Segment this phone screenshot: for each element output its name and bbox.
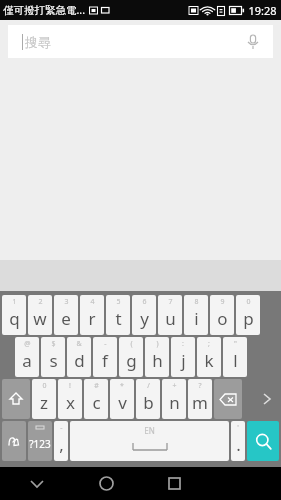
staticText: y [140,307,149,330]
staticText: z [40,391,48,414]
staticText: ' [237,423,239,433]
staticText: 5 [116,297,121,307]
button[interactable]: / [136,379,160,419]
staticText: w [33,307,47,330]
staticText: p [243,307,254,330]
staticText: + [172,381,177,391]
button[interactable]: Recents [157,467,191,500]
staticText: h [152,349,163,372]
staticText: ; [208,339,210,349]
button[interactable]: ?123 [28,421,52,461]
button[interactable]: 4 [80,295,104,335]
button[interactable]: ! [58,379,82,419]
button[interactable]: - [54,421,68,461]
button[interactable]: Hide keyboard [20,467,54,500]
staticText: g [126,349,137,372]
button[interactable]: 6 [132,295,156,335]
staticText: u [165,307,176,330]
staticText: : [182,339,184,349]
button[interactable]: ( [119,337,143,377]
staticText: v [118,391,127,414]
staticText: 0 [42,381,47,391]
button[interactable]: - [93,337,117,377]
button[interactable]: Search [247,421,279,461]
staticText: ?123 [29,437,51,451]
staticText: q [9,307,20,330]
staticText: 2 [38,297,43,307]
staticText: l [233,349,238,372]
button[interactable]: 搜尋 [8,25,273,58]
staticText: 19:28 [248,3,277,18]
staticText: a [22,349,32,372]
button[interactable]: 1 [2,295,26,335]
button[interactable]: $ [41,337,65,377]
staticText: 7 [168,297,173,307]
staticText: o [217,307,228,330]
button[interactable]: " [223,337,247,377]
staticText: i [194,307,199,330]
staticText: x [66,391,75,414]
staticText: 搜尋 [25,34,51,50]
button[interactable]: Home [89,467,123,500]
staticText: / [147,381,150,391]
staticText: c [92,391,101,414]
staticText: 1 [12,297,17,307]
staticText: f [102,349,108,372]
staticText: - [104,339,107,349]
staticText: 3 [64,297,69,307]
staticText: 8 [194,297,199,307]
button[interactable]: @ [15,337,39,377]
staticText: e [61,307,71,330]
button[interactable]: ' [231,421,245,461]
staticText: r [88,307,96,330]
button[interactable]: Voice search [243,32,263,52]
button[interactable]: 2 [28,295,52,335]
button[interactable]: # [84,379,108,419]
staticText: EN [144,425,155,436]
staticText: b [143,391,154,414]
button[interactable]: Handwriting [2,421,26,461]
staticText: 9 [220,297,225,307]
staticText: s [49,349,58,372]
staticText: ? [198,381,202,391]
staticText: j [181,349,186,372]
button[interactable]: Next [256,388,278,410]
staticText: 僅可撥打緊急電... [3,3,85,17]
staticText: 4 [90,297,95,307]
button[interactable]: * [110,379,134,419]
staticText: , [59,433,64,456]
button[interactable]: ) [145,337,169,377]
staticText: d [74,349,85,372]
staticText: ) [156,339,159,349]
staticText: n [169,391,180,414]
button[interactable]: 8 [184,295,208,335]
button[interactable]: 0 [236,295,260,335]
staticText: - [60,423,63,433]
button[interactable]: 0 [32,379,56,419]
button[interactable]: 5 [106,295,130,335]
staticText: ! [69,381,71,391]
staticText: 0 [246,297,251,307]
button[interactable]: Shift [2,379,30,419]
staticText: m [192,391,208,414]
button[interactable]: ? [188,379,212,419]
button[interactable]: Backspace [214,379,242,419]
staticText: t [115,307,122,330]
button[interactable]: Space [70,421,229,461]
staticText: " [234,339,237,349]
staticText: & [76,339,82,349]
staticText: * [120,381,124,391]
staticText: k [204,349,214,372]
staticText: # [94,381,99,391]
button[interactable]: + [162,379,186,419]
button[interactable]: & [67,337,91,377]
staticText: @ [24,339,31,349]
button[interactable]: ; [197,337,221,377]
button[interactable]: : [171,337,195,377]
button[interactable]: 3 [54,295,78,335]
button[interactable]: 9 [210,295,234,335]
staticText: 6 [142,297,147,307]
staticText: . [236,433,241,456]
staticText: $ [51,339,56,349]
button[interactable]: 7 [158,295,182,335]
